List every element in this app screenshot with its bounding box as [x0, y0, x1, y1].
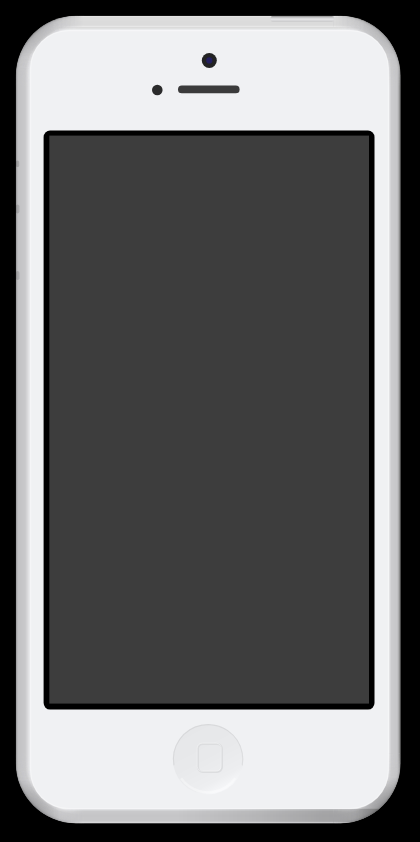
- button[interactable]: Volume down: [13, 268, 22, 283]
- button[interactable]: Volume up: [13, 202, 22, 216]
- button[interactable]: Home: [173, 724, 243, 794]
- button[interactable]: Power: [270, 13, 334, 24]
- button[interactable]: Ring silent switch: [13, 158, 22, 170]
